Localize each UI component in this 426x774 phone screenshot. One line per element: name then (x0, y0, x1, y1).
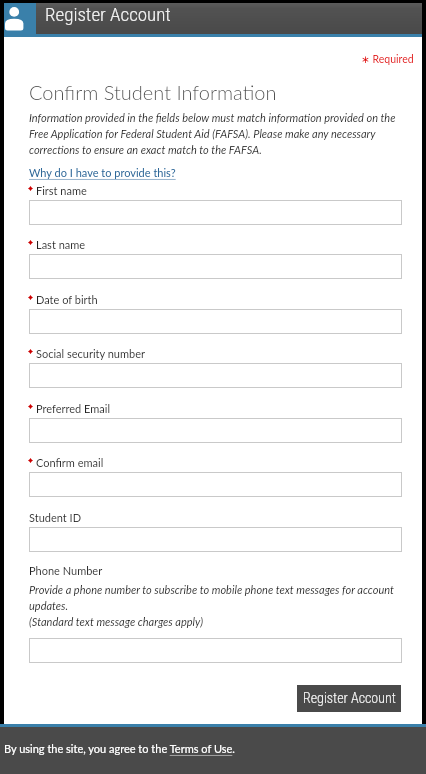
staticText: First name (36, 184, 87, 197)
button[interactable]: Phone Number (29, 638, 402, 663)
staticText: Provide a phone number to subscribe to m… (29, 583, 402, 628)
button[interactable]: By using the site, you agree to the Term… (4, 742, 235, 755)
staticText: Date of birth (36, 293, 98, 306)
staticText: Register Account (303, 690, 396, 706)
button[interactable]: Why do I have to provide this? (29, 166, 176, 179)
staticText: Information provided in the fields below… (29, 111, 402, 156)
button[interactable]: Confirm email (29, 472, 402, 497)
staticText: Register Account (45, 3, 171, 25)
button[interactable]: Account (4, 3, 36, 34)
staticText: Student ID (29, 511, 82, 524)
staticText: Preferred Email (36, 402, 111, 415)
staticText: Social security number (36, 347, 145, 360)
button[interactable]: Date of birth (29, 309, 402, 334)
button[interactable]: Register Account (36, 3, 422, 34)
staticText: Confirm Student Information (29, 80, 277, 104)
staticText: Last name (36, 238, 86, 251)
button[interactable]: Social security number (29, 363, 402, 388)
button[interactable]: Last name (29, 254, 402, 279)
button[interactable]: Preferred Email (29, 418, 402, 443)
staticText: Confirm email (36, 456, 104, 469)
button[interactable]: First name (29, 200, 402, 225)
button[interactable]: Student ID (29, 527, 402, 552)
staticText: ∗ Required (361, 53, 414, 66)
button[interactable]: Register Account (297, 685, 401, 712)
staticText: Phone Number (29, 564, 103, 577)
